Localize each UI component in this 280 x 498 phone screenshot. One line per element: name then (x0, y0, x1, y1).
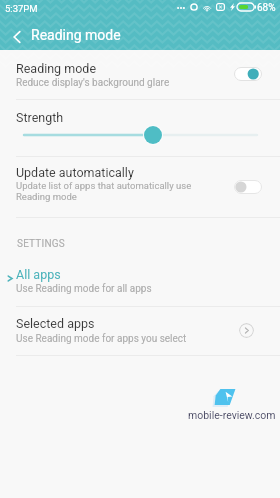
staticText: 5:37PM (5, 3, 38, 14)
button[interactable]: Reading mode on (234, 67, 262, 81)
staticText: mobile-review.com (188, 409, 276, 421)
button[interactable]: Back (5, 25, 29, 49)
button[interactable]: Reading mode (0, 50, 280, 99)
button[interactable]: Open selected apps (239, 323, 254, 338)
staticText: SETTINGS (17, 238, 65, 250)
staticText: Reading mode (31, 27, 121, 43)
staticText: Strength (16, 110, 64, 125)
button[interactable]: Update automatically off (234, 180, 262, 194)
staticText: 68% (257, 2, 276, 14)
button[interactable]: Update automatically (0, 157, 280, 217)
staticText: All apps (16, 267, 61, 282)
staticText: Reduce display's background glare (16, 77, 170, 89)
staticText: Update list of apps that automatically u… (16, 180, 192, 202)
staticText: Use Reading mode for apps you select (16, 333, 187, 345)
staticText: Update automatically (16, 165, 134, 180)
staticText: Use Reading mode for all apps (16, 283, 152, 295)
staticText: Reading mode (16, 61, 97, 76)
staticText: Selected apps (16, 316, 95, 331)
button[interactable]: Selected apps (0, 307, 280, 355)
button[interactable]: All apps (0, 258, 280, 306)
